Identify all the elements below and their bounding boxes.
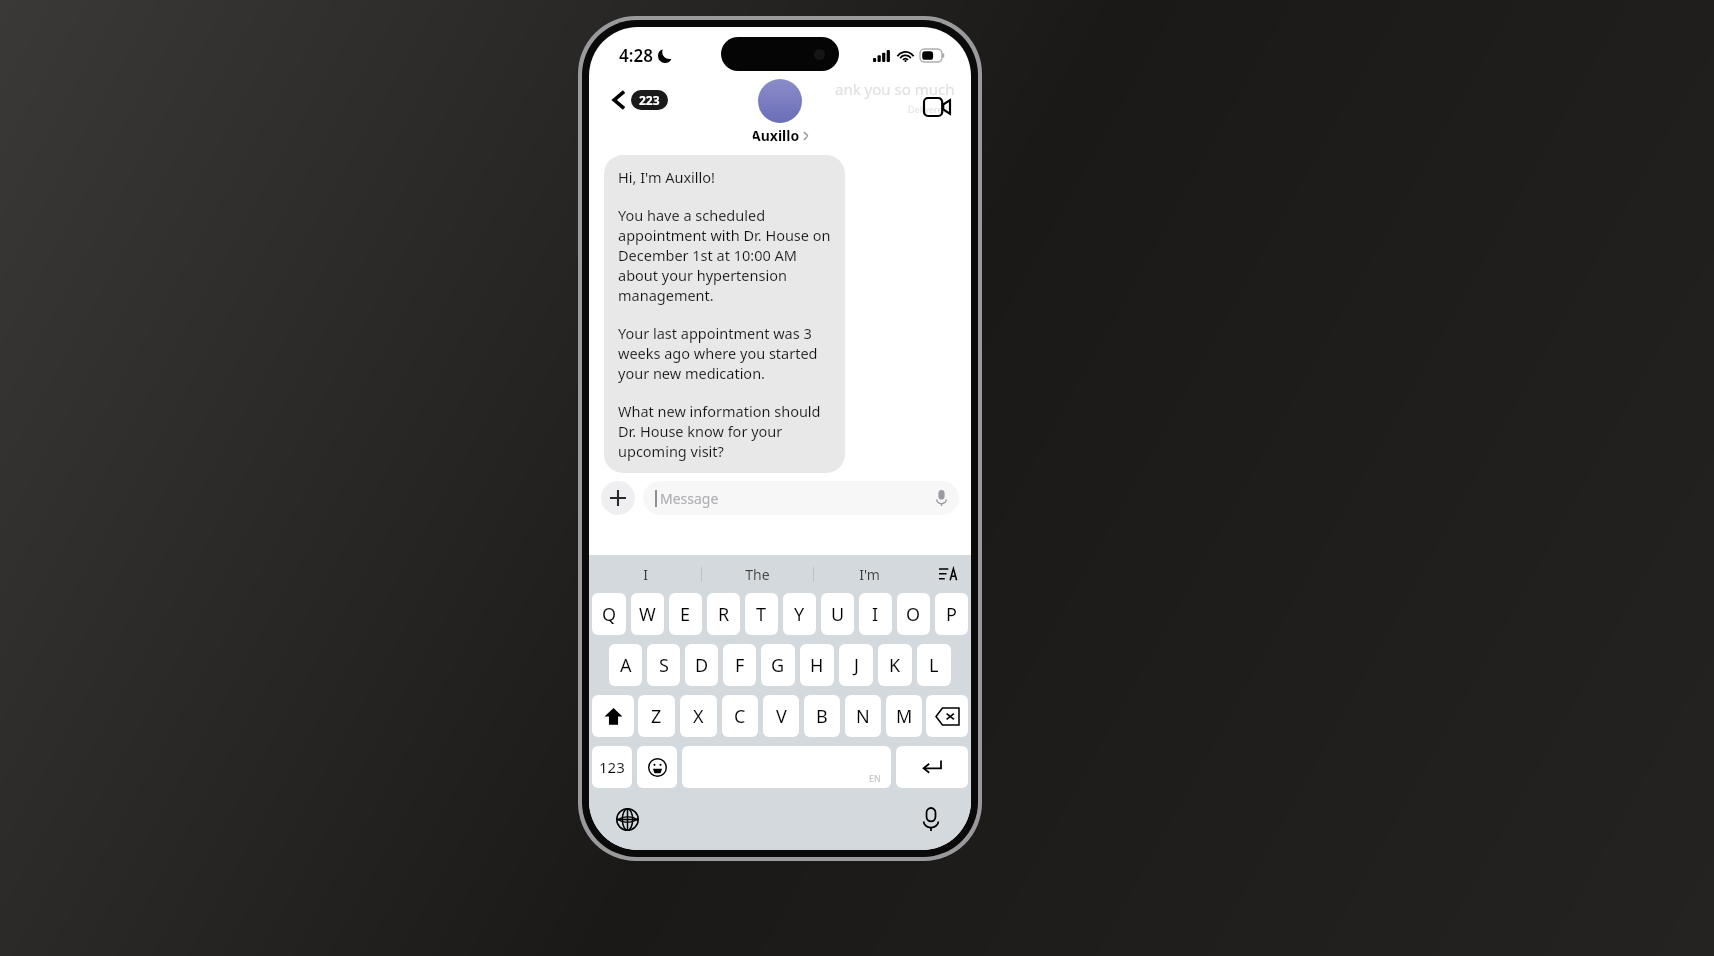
button[interactable]: Emoji — [637, 746, 677, 788]
button[interactable]: I — [859, 593, 892, 635]
staticText: U — [831, 602, 845, 627]
staticText: F — [735, 653, 745, 678]
button[interactable]: Z — [638, 695, 675, 737]
button[interactable]: Return — [896, 746, 968, 788]
staticText: T — [756, 602, 767, 627]
button[interactable]: EN — [682, 746, 891, 788]
staticText: about your hypertension — [618, 265, 787, 285]
button[interactable]: A — [609, 644, 642, 686]
staticText: Y — [794, 602, 805, 627]
button[interactable]: V — [763, 695, 799, 737]
staticText: upcoming visit? — [618, 441, 724, 461]
staticText: 223 — [639, 92, 660, 108]
staticText: 4:28 — [619, 44, 653, 67]
staticText: R — [718, 602, 730, 627]
staticText: Hi, I'm Auxillo! — [618, 167, 716, 187]
button[interactable]: M — [886, 695, 922, 737]
button[interactable]: R — [707, 593, 740, 635]
staticText: B — [816, 704, 828, 729]
staticText: J — [854, 653, 859, 678]
button[interactable]: W — [631, 593, 664, 635]
button[interactable]: B — [804, 695, 840, 737]
button[interactable]: D — [685, 644, 718, 686]
button[interactable]: Message — [643, 481, 959, 515]
staticText: G — [771, 653, 785, 678]
button[interactable]: 123 — [592, 746, 632, 788]
staticText: weeks ago where you started — [618, 343, 818, 363]
button[interactable]: K — [878, 644, 912, 686]
staticText: L — [929, 653, 939, 678]
button[interactable]: G — [761, 644, 795, 686]
staticText: Dr. House know for your — [618, 421, 783, 441]
button[interactable]: N — [845, 695, 881, 737]
button[interactable]: L — [917, 644, 951, 686]
staticText: management. — [618, 285, 714, 305]
button[interactable]: Shift — [592, 695, 634, 737]
button[interactable]: I'm — [814, 555, 925, 593]
button[interactable]: E — [669, 593, 702, 635]
staticText: X — [693, 704, 704, 729]
button[interactable]: Dictation — [913, 801, 949, 837]
button[interactable]: I — [589, 555, 701, 593]
button[interactable]: Backspace — [926, 695, 968, 737]
staticText: P — [946, 602, 957, 627]
button[interactable]: T — [745, 593, 778, 635]
staticText: appointment with Dr. House on — [618, 225, 831, 245]
button[interactable]: U — [821, 593, 854, 635]
staticText: I — [872, 602, 879, 627]
staticText: your new medication. — [618, 363, 765, 383]
staticText: S — [659, 653, 669, 678]
button[interactable]: F — [723, 644, 756, 686]
staticText: EN — [869, 772, 881, 784]
staticText: Q — [602, 602, 617, 627]
staticText: H — [810, 653, 824, 678]
button[interactable]: C — [722, 695, 758, 737]
staticText: I'm — [859, 565, 880, 584]
staticText: C — [734, 704, 746, 729]
button[interactable]: O — [897, 593, 930, 635]
staticText: Delivered — [908, 103, 949, 115]
staticText: The — [745, 565, 770, 584]
staticText: Message — [660, 489, 936, 508]
staticText: December 1st at 10:00 AM — [618, 245, 797, 265]
staticText: A — [620, 653, 632, 678]
button[interactable]: Formatting — [925, 555, 971, 593]
staticText: I — [643, 565, 648, 584]
button[interactable]: J — [839, 644, 873, 686]
staticText: ank you so much — [835, 79, 955, 99]
staticText: You have a scheduled — [618, 205, 766, 225]
button[interactable]: H — [800, 644, 834, 686]
button[interactable]: Q — [592, 593, 626, 635]
staticText: W — [639, 602, 656, 627]
staticText: E — [680, 602, 691, 627]
staticText: N — [856, 704, 870, 729]
button[interactable]: 223 — [605, 85, 676, 115]
button[interactable]: Change keyboard — [609, 801, 645, 837]
button[interactable]: P — [935, 593, 968, 635]
staticText: What new information should — [618, 401, 821, 421]
staticText: V — [776, 704, 787, 729]
button[interactable]: Auxillo — [751, 79, 809, 145]
staticText: D — [695, 653, 709, 678]
button[interactable]: The — [702, 555, 813, 593]
button[interactable]: X — [680, 695, 717, 737]
staticText: Auxillo — [751, 126, 800, 145]
button[interactable]: Add attachment — [601, 481, 635, 515]
staticText: 123 — [599, 757, 625, 777]
button[interactable]: S — [647, 644, 680, 686]
staticText: Z — [651, 704, 662, 729]
button[interactable]: Hi, I'm Auxillo! — [604, 155, 845, 473]
staticText: Your last appointment was 3 — [618, 323, 812, 343]
button[interactable]: Video call — [917, 87, 957, 127]
button[interactable]: Y — [783, 593, 816, 635]
staticText: O — [906, 602, 921, 627]
staticText: K — [889, 653, 901, 678]
staticText: M — [896, 704, 913, 729]
